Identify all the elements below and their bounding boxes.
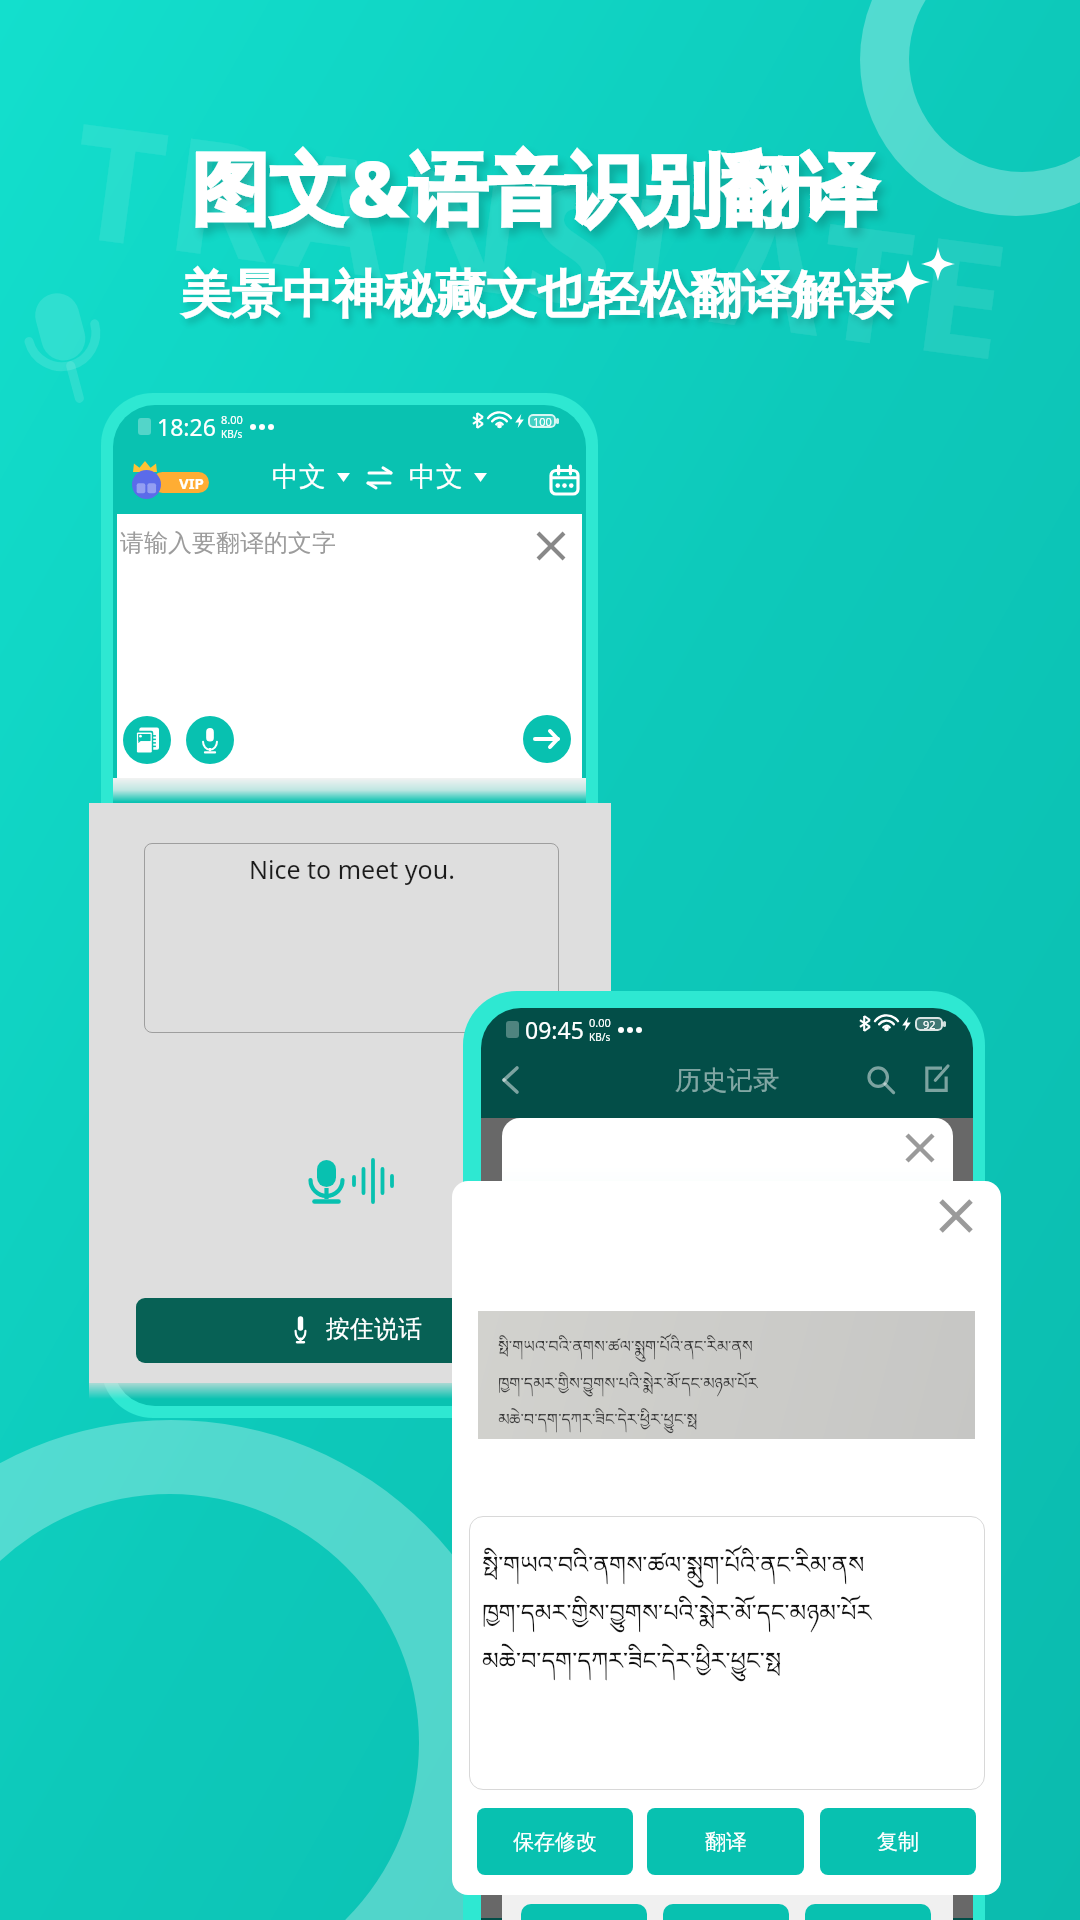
staticText: VIP	[179, 473, 204, 493]
button[interactable]: 保存修改	[477, 1808, 633, 1875]
button[interactable]: Close	[941, 1201, 971, 1231]
staticText: 09:45	[525, 1014, 584, 1045]
staticText: KB/s	[589, 1030, 611, 1044]
staticText: སྥི་གཡའ་བའི་ནགས་ཚལ་སྨུག་པོའི་ནང་རིམ་ནས ཁ…	[482, 1538, 872, 1701]
button[interactable]: 中文	[272, 460, 350, 494]
button[interactable]	[521, 1904, 647, 1920]
staticText: KB/s	[221, 427, 243, 441]
staticText: 请输入要翻译的文字	[120, 528, 336, 558]
button[interactable]: Edit	[925, 1066, 948, 1092]
staticText: 图文&语音识别翻译	[191, 134, 878, 241]
button[interactable]: 中文	[409, 460, 487, 494]
button[interactable]: Close card	[907, 1135, 933, 1161]
button[interactable]: 复制	[820, 1808, 976, 1875]
staticText: 历史记录	[675, 1064, 779, 1097]
button[interactable]: Swap languages	[367, 467, 392, 488]
staticText: 0.00	[589, 1015, 611, 1030]
button[interactable]: 翻译	[647, 1808, 804, 1875]
staticText: 中文	[272, 460, 326, 494]
button[interactable]: 按住说话	[136, 1298, 566, 1363]
button[interactable]: Calendar	[551, 466, 578, 494]
button[interactable]: Search	[867, 1066, 895, 1094]
button[interactable]: Voice input	[186, 716, 234, 764]
button[interactable]: Translate	[523, 715, 571, 763]
staticText: 复制	[877, 1829, 919, 1855]
staticText: Nice to meet you.	[249, 852, 455, 886]
staticText: 按住说话	[326, 1314, 422, 1344]
staticText: 中文	[409, 460, 463, 494]
staticText: 保存修改	[513, 1829, 597, 1855]
staticText: 100	[533, 414, 552, 428]
button[interactable]: Photo translate	[123, 716, 171, 764]
button[interactable]: Back	[502, 1066, 517, 1094]
staticText: 美景中神秘藏文也轻松翻译解读	[180, 263, 894, 327]
staticText: TRANSLATE	[60, 68, 1027, 407]
button[interactable]: VIP	[130, 461, 212, 499]
button[interactable]	[805, 1904, 931, 1920]
staticText: 8.00	[221, 412, 243, 427]
staticText: 18:26	[157, 411, 216, 442]
staticText: 翻译	[705, 1829, 747, 1855]
staticText: སྥི་གཡའ་བའི་ནགས་ཚལ་སྨུག་པོའི་ནང་རིམ་ནས ཁ…	[498, 1329, 758, 1446]
button[interactable]: Clear	[538, 533, 564, 559]
button[interactable]	[663, 1904, 789, 1920]
staticText: 92	[923, 1017, 936, 1031]
